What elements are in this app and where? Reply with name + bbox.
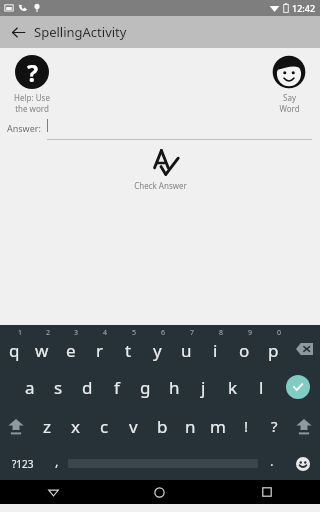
other: Check Answer: [141, 148, 181, 178]
staticText: 8: [219, 328, 224, 338]
button[interactable]: Shift: [0, 407, 32, 447]
button[interactable]: Emoji: [286, 447, 320, 480]
button[interactable]: g: [131, 367, 160, 407]
staticText: z: [43, 415, 51, 438]
staticText: x: [71, 415, 80, 438]
button[interactable]: Backspace: [288, 327, 320, 367]
button[interactable]: 5: [114, 327, 143, 367]
staticText: Say Word: [279, 92, 300, 114]
button[interactable]: s: [44, 367, 73, 407]
staticText: 9: [248, 328, 253, 338]
staticText: .: [270, 452, 274, 470]
button[interactable]: b: [148, 407, 176, 447]
button[interactable]: 8: [201, 327, 230, 367]
button[interactable]: c: [90, 407, 119, 447]
staticText: w: [35, 339, 49, 362]
button[interactable]: 7: [172, 327, 201, 367]
staticText: 1: [18, 328, 23, 338]
staticText: o: [239, 339, 250, 362]
staticText: v: [129, 415, 138, 438]
button[interactable]: Check Answer: [134, 148, 187, 191]
button[interactable]: 2: [28, 327, 56, 367]
button[interactable]: v: [119, 407, 148, 447]
staticText: h: [169, 376, 180, 399]
staticText: Check Answer: [134, 180, 187, 191]
button[interactable]: n: [176, 407, 204, 447]
button[interactable]: f: [102, 367, 131, 407]
button[interactable]: 0: [259, 327, 288, 367]
staticText: c: [100, 415, 109, 438]
staticText: n: [185, 415, 196, 438]
button[interactable]: Shift: [288, 407, 320, 447]
staticText: ?123: [12, 457, 34, 471]
staticText: k: [228, 376, 238, 399]
staticText: d: [82, 376, 93, 399]
button[interactable]: ,: [46, 447, 68, 480]
staticText: p: [268, 339, 279, 362]
button[interactable]: [47, 118, 312, 140]
staticText: 4: [103, 328, 108, 338]
button[interactable]: h: [160, 367, 189, 407]
button[interactable]: 9: [230, 327, 259, 367]
staticText: 12:42: [292, 2, 316, 14]
staticText: ,: [55, 452, 59, 470]
staticText: 7: [190, 328, 195, 338]
staticText: 6: [161, 328, 166, 338]
button[interactable]: !: [232, 407, 260, 447]
staticText: 0: [277, 328, 282, 338]
button[interactable]: Space: [68, 447, 258, 480]
staticText: f: [114, 376, 120, 399]
button[interactable]: Recent apps: [213, 480, 320, 504]
button[interactable]: ?: [260, 407, 288, 447]
button[interactable]: 6: [143, 327, 172, 367]
staticText: l: [259, 376, 264, 399]
staticText: 5: [132, 328, 137, 338]
staticText: u: [181, 339, 192, 362]
staticText: q: [9, 339, 20, 362]
staticText: b: [157, 415, 168, 438]
button[interactable]: Back: [0, 480, 106, 504]
staticText: 2: [46, 328, 51, 338]
button[interactable]: ?: [6, 55, 58, 114]
staticText: g: [140, 376, 151, 399]
button[interactable]: k: [218, 367, 247, 407]
button[interactable]: m: [204, 407, 232, 447]
other: Say Word: [272, 55, 306, 89]
button[interactable]: z: [32, 407, 61, 447]
staticText: s: [54, 376, 63, 399]
button[interactable]: a: [16, 367, 44, 407]
button[interactable]: .: [258, 447, 286, 480]
button[interactable]: Say Word: [265, 55, 313, 114]
staticText: SpellingActivity: [34, 23, 127, 41]
staticText: m: [210, 415, 226, 438]
button[interactable]: l: [247, 367, 276, 407]
button[interactable]: x: [61, 407, 90, 447]
button[interactable]: 3: [56, 327, 85, 367]
button[interactable]: ?123: [0, 447, 46, 480]
staticText: y: [153, 339, 162, 362]
button[interactable]: j: [189, 367, 218, 407]
staticText: r: [96, 339, 104, 362]
staticText: ?: [271, 416, 278, 436]
button[interactable]: 4: [85, 327, 114, 367]
staticText: !: [244, 416, 249, 436]
staticText: a: [25, 376, 35, 399]
button[interactable]: Back: [6, 20, 30, 44]
button[interactable]: 1: [0, 327, 28, 367]
staticText: i: [213, 339, 218, 362]
staticText: e: [66, 339, 76, 362]
staticText: t: [125, 339, 132, 362]
button[interactable]: Home: [106, 480, 213, 504]
staticText: 3: [74, 328, 79, 338]
button[interactable]: Enter: [276, 367, 320, 407]
staticText: Answer:: [7, 122, 41, 134]
button[interactable]: d: [73, 367, 102, 407]
staticText: ?: [27, 57, 38, 88]
staticText: Help: Use the word: [14, 92, 50, 114]
staticText: j: [201, 376, 206, 399]
